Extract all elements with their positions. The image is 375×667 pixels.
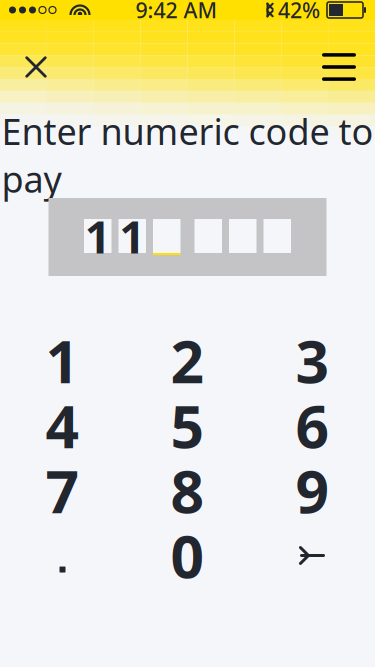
staticText: 5 [170, 386, 204, 464]
button[interactable]: 0 [125, 523, 250, 588]
button[interactable]: Menu [316, 44, 362, 90]
button[interactable]: 1 [0, 328, 125, 393]
button[interactable]: 6 [250, 393, 375, 458]
staticText: 42% [278, 0, 320, 24]
staticText: 4 [45, 386, 79, 464]
staticText: 9 [295, 451, 329, 529]
staticText: 1 [119, 206, 145, 266]
staticText: 3 [295, 321, 329, 399]
staticText: 6 [295, 386, 329, 464]
button[interactable]: 3 [250, 328, 375, 393]
staticText: 2 [170, 321, 204, 399]
button[interactable]: 8 [125, 458, 250, 523]
staticText: 0 [170, 516, 204, 594]
button[interactable]: 2 [125, 328, 250, 393]
button[interactable]: 5 [125, 393, 250, 458]
button[interactable]: Backspace [250, 523, 375, 588]
staticText: 8 [170, 451, 204, 529]
staticText: 1 [45, 321, 79, 399]
button[interactable]: 7 [0, 458, 125, 523]
button[interactable]: Close [13, 44, 59, 90]
staticText: 7 [45, 451, 79, 529]
staticText: Enter numeric code to pay [1, 107, 373, 203]
button[interactable]: 9 [250, 458, 375, 523]
button[interactable]: Decimal point [0, 523, 125, 588]
staticText: 1 [85, 206, 111, 266]
button[interactable]: 4 [0, 393, 125, 458]
staticText: 9:42 AM [135, 0, 217, 24]
